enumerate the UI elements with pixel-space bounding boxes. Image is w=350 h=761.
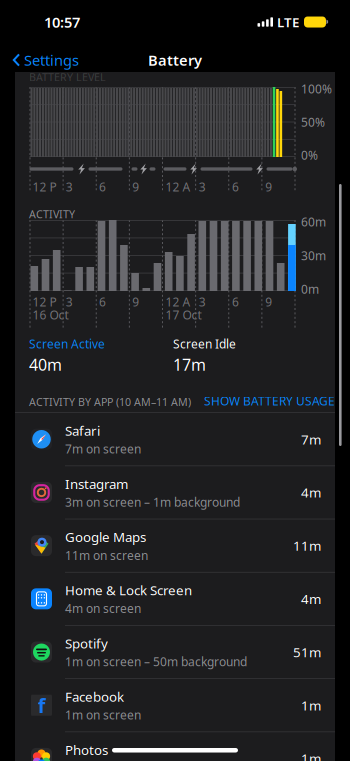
staticText: 3 <box>199 179 206 195</box>
staticText: BATTERY LEVEL <box>29 70 106 84</box>
staticText: 6 <box>99 294 106 310</box>
staticText: 4m <box>301 590 321 608</box>
staticText: 17m <box>173 354 206 375</box>
staticText: 12 A <box>165 179 190 195</box>
staticText: LTE <box>277 13 299 31</box>
staticText: 11m <box>293 537 321 554</box>
staticText: 11m on screen <box>65 547 148 563</box>
staticText: 1m on screen <box>65 707 141 723</box>
staticText: Home & Lock Screen <box>65 581 192 599</box>
button[interactable]: SHOW BATTERY USAGE <box>204 393 335 409</box>
staticText: 6 <box>232 179 239 195</box>
button[interactable]: Safari <box>15 413 335 466</box>
staticText: 3 <box>66 179 73 195</box>
staticText: 9 <box>265 179 272 195</box>
staticText: 3 <box>66 294 73 310</box>
staticText: 100% <box>301 81 332 97</box>
staticText: Screen Idle <box>173 336 236 352</box>
staticText: f <box>37 692 45 719</box>
staticText: 60m <box>301 214 326 230</box>
staticText: 17 Oct <box>165 307 201 323</box>
staticText: Photos <box>65 741 108 759</box>
staticText: 1m on screen – 50m background <box>65 654 247 670</box>
staticText: Screen Active <box>29 336 105 352</box>
staticText: 9 <box>132 294 139 310</box>
staticText: Google Maps <box>65 528 146 546</box>
staticText: 3m on screen – 1m background <box>65 494 240 510</box>
staticText: Battery <box>148 50 202 70</box>
staticText: 4m <box>301 484 321 501</box>
staticText: ACTIVITY BY APP (10 AM–11 AM) <box>29 395 191 409</box>
staticText: 16 Oct <box>32 307 68 323</box>
button[interactable]: Photos <box>15 732 335 761</box>
staticText: 12 P <box>32 294 56 310</box>
staticText: 12 A <box>165 294 190 310</box>
staticText: 7m <box>301 430 321 448</box>
button[interactable]: Spotify <box>15 626 335 679</box>
staticText: 50% <box>301 114 325 130</box>
staticText: Facebook <box>65 688 124 705</box>
button[interactable]: f <box>15 679 335 732</box>
staticText: 7m on screen <box>65 441 141 457</box>
staticText: Instagram <box>65 475 128 493</box>
staticText: Safari <box>65 422 100 439</box>
staticText: 0m <box>301 281 319 297</box>
staticText: 0% <box>301 147 318 163</box>
staticText: 4m on screen <box>65 600 141 616</box>
staticText: Spotify <box>65 634 108 652</box>
staticText: 40m <box>29 354 62 375</box>
staticText: 30m <box>301 247 326 263</box>
staticText: 3 <box>199 294 206 310</box>
staticText: 6 <box>99 179 106 195</box>
staticText: SHOW BATTERY USAGE <box>204 393 335 409</box>
staticText: 9 <box>132 179 139 195</box>
staticText: ACTIVITY <box>29 207 75 221</box>
staticText: 6 <box>232 294 239 310</box>
staticText: Settings <box>24 50 79 70</box>
staticText: 10:57 <box>44 12 80 32</box>
button[interactable]: Instagram <box>15 466 335 519</box>
button[interactable]: Google Maps <box>15 519 335 573</box>
button[interactable]: Settings <box>0 44 89 76</box>
staticText: 1m <box>301 750 321 761</box>
staticText: 1m <box>301 696 321 714</box>
button[interactable]: Home & Lock Screen <box>15 573 335 626</box>
staticText: 12 P <box>32 179 56 195</box>
staticText: 9 <box>265 294 272 310</box>
staticText: 51m <box>293 643 321 661</box>
